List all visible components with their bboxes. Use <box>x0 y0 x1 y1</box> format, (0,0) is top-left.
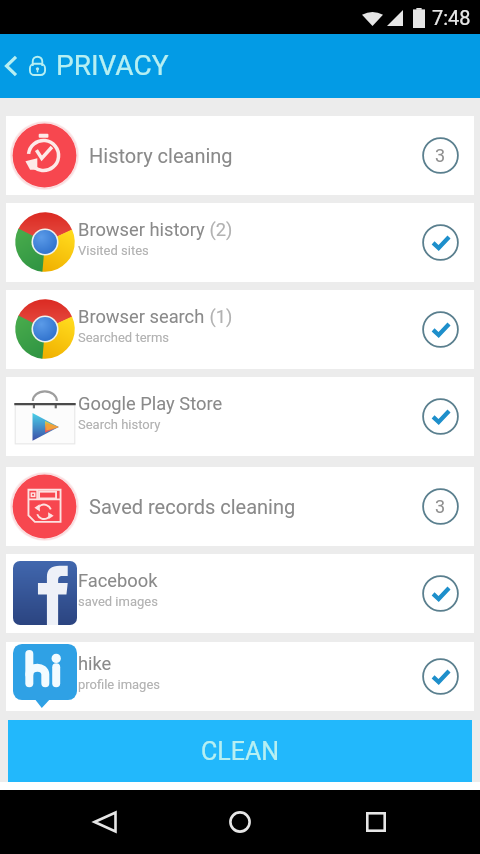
button[interactable]: Back <box>0 48 24 84</box>
staticText: Google Play Store <box>78 393 223 414</box>
staticText: hike <box>78 653 112 674</box>
staticText: (1) <box>205 306 233 327</box>
staticText: Browser history <box>78 219 205 240</box>
staticText: 3 <box>435 496 446 517</box>
button[interactable]: Home <box>209 791 271 853</box>
staticText: Facebook <box>78 570 158 591</box>
staticText: PRIVACY <box>56 49 169 82</box>
button[interactable]: Browser history <box>6 203 474 282</box>
staticText: saved images <box>78 594 158 609</box>
staticText: History cleaning <box>89 144 233 167</box>
staticText: Search history <box>78 417 161 432</box>
button[interactable]: History cleaning <box>6 116 474 195</box>
staticText: CLEAN <box>201 737 280 766</box>
button[interactable]: Saved records cleaning <box>6 467 474 546</box>
staticText: Browser search <box>78 306 205 327</box>
staticText: Searched terms <box>78 330 170 345</box>
staticText: Saved records cleaning <box>89 495 296 518</box>
staticText: profile images <box>78 677 161 692</box>
button[interactable]: CLEAN <box>8 720 472 782</box>
button[interactable]: Back <box>74 791 136 853</box>
button[interactable]: Google Play Store <box>6 377 474 456</box>
button[interactable]: hike <box>6 642 474 711</box>
button[interactable]: Recents <box>345 791 407 853</box>
staticText: 3 <box>435 145 446 166</box>
staticText: (2) <box>205 219 233 240</box>
staticText: 7:48 <box>432 6 471 29</box>
staticText: Visited sites <box>78 243 149 258</box>
button[interactable]: Facebook <box>6 554 474 633</box>
button[interactable]: Browser search <box>6 290 474 369</box>
